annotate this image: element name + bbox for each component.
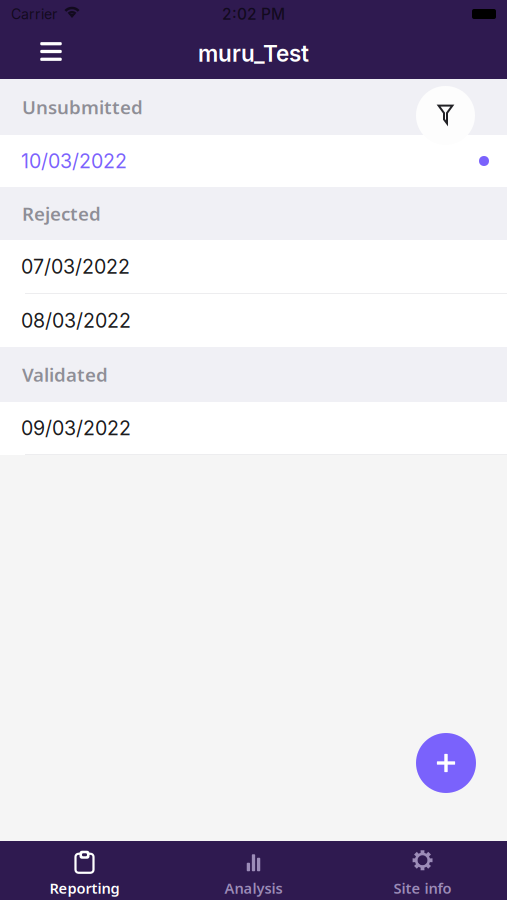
button[interactable]: Reporting (0, 841, 169, 900)
button[interactable]: 09/03/2022 (0, 402, 507, 454)
staticText: 09/03/2022 (21, 416, 131, 440)
staticText: 07/03/2022 (21, 255, 130, 278)
staticText: Rejected (22, 201, 101, 226)
staticText: 08/03/2022 (21, 309, 131, 332)
button[interactable]: 08/03/2022 (0, 294, 507, 347)
staticText: Carrier (11, 5, 57, 22)
staticText: Analysis (224, 878, 282, 898)
staticText: 2:02 PM (222, 5, 285, 23)
staticText: Reporting (49, 878, 119, 898)
staticText: muru_Test (198, 40, 309, 67)
button[interactable]: Site info (338, 841, 507, 900)
button[interactable]: Add record (416, 733, 476, 793)
button[interactable]: 10/03/2022 (0, 135, 507, 187)
button[interactable]: 07/03/2022 (0, 240, 507, 293)
button[interactable]: Filter (416, 86, 475, 145)
staticText: Validated (22, 362, 108, 387)
button[interactable]: Analysis (169, 841, 338, 900)
button[interactable]: Menu (29, 31, 73, 75)
staticText: Site info (393, 878, 451, 898)
staticText: Unsubmitted (22, 95, 143, 119)
staticText: 10/03/2022 (21, 149, 127, 173)
